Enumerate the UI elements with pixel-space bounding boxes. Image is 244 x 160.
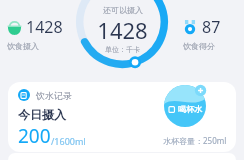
staticText: 单位：千卡	[105, 45, 140, 54]
staticText: /1600ml	[51, 135, 86, 147]
staticText: 饮食摄入	[7, 41, 39, 51]
staticText: 今日摄入	[18, 107, 66, 122]
staticText: 1428	[26, 16, 63, 38]
staticText: 1428	[97, 15, 148, 45]
staticText: 还可以摄入	[103, 5, 143, 15]
staticText: 87	[202, 16, 221, 38]
button[interactable]: 饮水记录	[8, 82, 236, 152]
staticText: 饮食得分	[183, 41, 215, 51]
staticText: 水杯容量：250ml	[163, 135, 227, 146]
staticText: 喝杯水	[178, 104, 202, 114]
button[interactable]: 1428	[7, 16, 63, 51]
button[interactable]: 喝杯水	[164, 85, 206, 127]
staticText: 200	[18, 123, 51, 149]
button[interactable]: 87	[183, 16, 221, 51]
staticText: 饮水记录	[36, 90, 72, 101]
